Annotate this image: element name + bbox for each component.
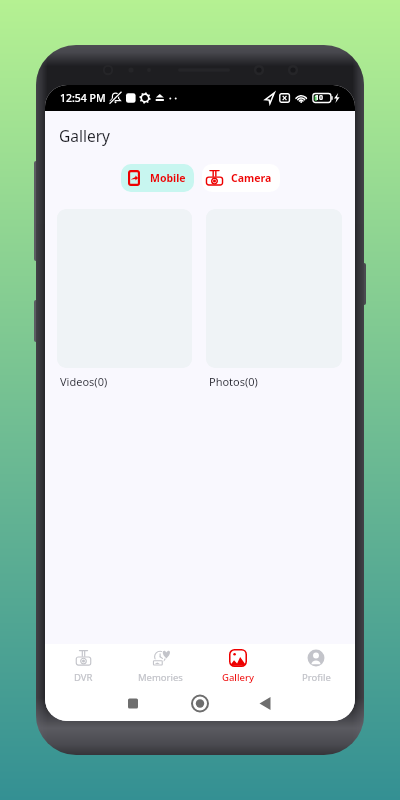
staticText: Photos(0) (209, 374, 258, 389)
staticText: Videos(0) (60, 374, 108, 389)
staticText: Camera (231, 171, 272, 185)
staticText: DVR (74, 671, 93, 684)
button[interactable]: Profile (277, 644, 355, 684)
staticText: 10 (315, 93, 324, 103)
button[interactable]: Camera (202, 164, 280, 192)
button[interactable]: Gallery (199, 644, 277, 684)
button[interactable]: Mobile (121, 164, 194, 192)
staticText: 12:54 PM (60, 91, 106, 105)
button[interactable]: Memories (122, 644, 199, 684)
staticText: Gallery (59, 125, 111, 146)
staticText: Gallery (222, 671, 254, 684)
staticText: Memories (138, 671, 183, 684)
staticText: Profile (302, 671, 331, 684)
button[interactable]: DVR (45, 644, 122, 684)
staticText: Mobile (150, 171, 186, 185)
